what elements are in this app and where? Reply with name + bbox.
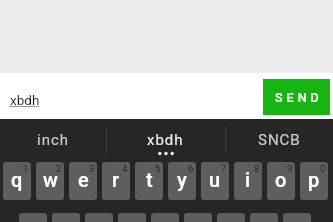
button[interactable]: r: [102, 162, 130, 200]
staticText: 9: [287, 163, 293, 174]
staticText: xbdh: [10, 92, 40, 108]
button[interactable]: h: [184, 213, 212, 222]
staticText: o: [275, 168, 287, 191]
button[interactable]: d: [85, 213, 113, 222]
staticText: w: [43, 168, 58, 191]
button[interactable]: q: [3, 162, 31, 200]
button[interactable]: i: [234, 162, 262, 200]
staticText: e: [78, 168, 89, 191]
staticText: i: [245, 168, 251, 191]
button[interactable]: w: [36, 162, 64, 200]
staticText: 7: [221, 163, 227, 174]
button[interactable]: inch: [0, 119, 106, 137]
staticText: 1: [23, 163, 29, 174]
button[interactable]: l: [283, 213, 311, 222]
staticText: 0: [320, 163, 326, 174]
button[interactable]: j: [217, 213, 245, 222]
staticText: u: [209, 168, 221, 191]
staticText: p: [308, 168, 320, 191]
staticText: y: [177, 168, 187, 191]
button[interactable]: k: [250, 213, 278, 222]
staticText: 3: [89, 163, 95, 174]
staticText: 8: [254, 163, 260, 174]
staticText: inch: [37, 131, 70, 149]
staticText: SEND: [275, 90, 323, 105]
staticText: 6: [188, 163, 194, 174]
staticText: r: [112, 168, 120, 191]
button[interactable]: u: [201, 162, 229, 200]
button[interactable]: g: [151, 213, 179, 222]
button[interactable]: p: [300, 162, 328, 200]
button[interactable]: o: [267, 162, 295, 200]
staticText: 4: [122, 163, 128, 174]
staticText: xbdh: [147, 131, 184, 149]
staticText: 5: [155, 163, 161, 174]
button[interactable]: e: [69, 162, 97, 200]
button[interactable]: xbdh: [10, 92, 40, 108]
staticText: t: [146, 168, 153, 191]
button[interactable]: xbdh: [106, 119, 225, 148]
staticText: SNCB: [258, 131, 301, 149]
button[interactable]: t: [135, 162, 163, 200]
button[interactable]: SNCB: [225, 119, 333, 148]
staticText: 2: [56, 163, 62, 174]
button[interactable]: a: [19, 213, 47, 222]
button[interactable]: SEND: [263, 79, 330, 115]
staticText: q: [11, 168, 23, 191]
button[interactable]: y: [168, 162, 196, 200]
button[interactable]: f: [118, 213, 146, 222]
button[interactable]: s: [52, 213, 80, 222]
